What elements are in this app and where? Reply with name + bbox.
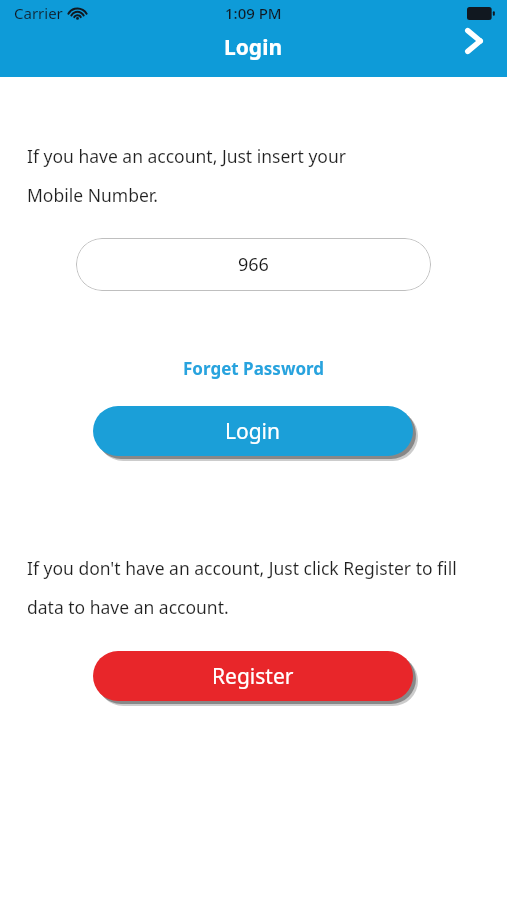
staticText: Register xyxy=(212,662,294,691)
staticText: 966 xyxy=(238,252,269,277)
staticText: Login xyxy=(225,417,281,446)
button[interactable]: Register xyxy=(93,651,413,701)
staticText: data to have an account. xyxy=(27,595,229,619)
button[interactable]: Next xyxy=(451,18,497,64)
staticText: Mobile Number. xyxy=(27,183,158,207)
staticText: Carrier xyxy=(14,3,63,23)
staticText: If you have an account, Just insert your xyxy=(27,144,346,168)
staticText: If you don't have an account, Just click… xyxy=(27,556,457,580)
button[interactable]: Login xyxy=(93,406,413,456)
staticText: 1:09 PM xyxy=(225,3,282,23)
button[interactable]: Forget Password xyxy=(173,353,335,384)
staticText: Forget Password xyxy=(183,357,325,380)
staticText: Login xyxy=(224,33,283,62)
button[interactable]: 966 xyxy=(76,238,431,291)
